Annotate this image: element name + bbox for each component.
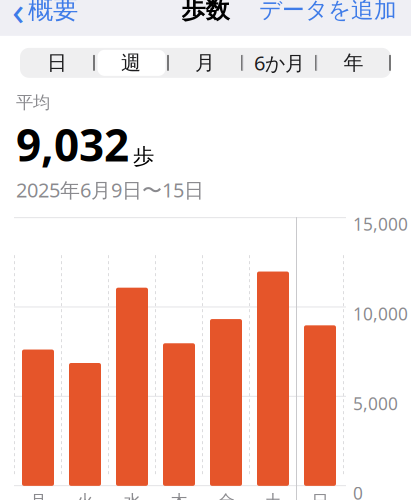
staticText: 平均 (16, 92, 50, 113)
staticText: 水 (123, 491, 140, 500)
staticText: 土 (264, 491, 281, 500)
staticText: 5,000 (353, 392, 398, 415)
button[interactable]: 週 (94, 48, 168, 78)
staticText: 火 (76, 491, 93, 500)
staticText: 概要 (28, 0, 78, 25)
staticText: 年 (343, 51, 363, 75)
staticText: 日 (47, 51, 67, 75)
staticText: 金 (217, 491, 234, 500)
button[interactable]: データを追加 (251, 0, 411, 36)
staticText: 日 (311, 491, 328, 500)
staticText: 15,000 (353, 213, 408, 236)
staticText: 月 (29, 491, 46, 500)
staticText: データを追加 (259, 0, 397, 24)
staticText: 2025年6月9日〜15日 (16, 177, 204, 203)
staticText: 9,032 (16, 115, 129, 174)
button[interactable]: 6か月 (242, 48, 316, 78)
button[interactable]: 月 (168, 48, 242, 78)
button[interactable]: 日 (20, 48, 94, 78)
staticText: 歩数 (181, 0, 229, 25)
staticText: 週 (121, 51, 141, 75)
button[interactable]: 年 (316, 48, 390, 78)
button[interactable]: ‹ (0, 0, 86, 36)
staticText: 月 (195, 51, 215, 75)
staticText: 歩 (133, 143, 154, 170)
staticText: 10,000 (353, 302, 408, 325)
staticText: 木 (170, 491, 187, 500)
staticText: 6か月 (254, 50, 305, 76)
staticText: ‹ (12, 0, 24, 36)
staticText: 0 (353, 482, 363, 500)
